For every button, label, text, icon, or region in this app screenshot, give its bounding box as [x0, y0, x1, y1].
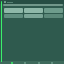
button[interactable]: Navigation rail — [1, 1, 2, 62]
button[interactable]: Card — [44, 8, 63, 13]
button[interactable]: Card — [4, 8, 23, 13]
button[interactable]: Menu — [4, 1, 6, 3]
button[interactable]: Card — [24, 14, 43, 18]
button[interactable]: Card — [24, 8, 43, 13]
